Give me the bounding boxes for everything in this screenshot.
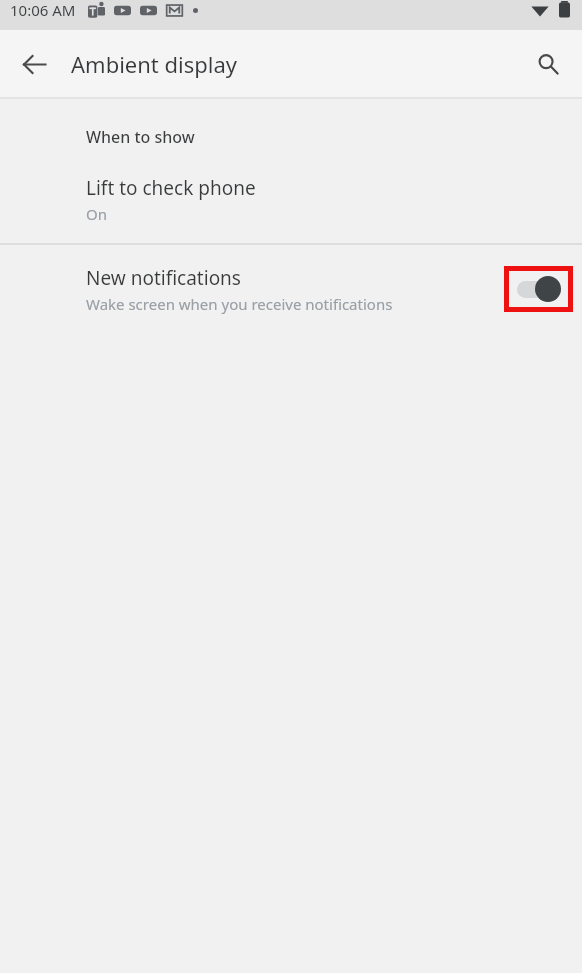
staticText: On xyxy=(86,204,107,224)
staticText: New notifications xyxy=(86,265,241,291)
staticText: Wake screen when you receive notificatio… xyxy=(86,294,393,314)
button[interactable]: Lift to check phone xyxy=(0,156,582,243)
staticText: Lift to check phone xyxy=(86,175,256,201)
button[interactable]: Search xyxy=(524,40,572,88)
staticText: Ambient display xyxy=(71,49,238,79)
button[interactable]: New notifications toggle xyxy=(504,266,573,312)
staticText: 10:06 AM xyxy=(10,0,76,20)
staticText: When to show xyxy=(86,126,195,148)
button[interactable]: New notifications xyxy=(0,245,582,333)
button[interactable]: Back xyxy=(10,40,58,88)
